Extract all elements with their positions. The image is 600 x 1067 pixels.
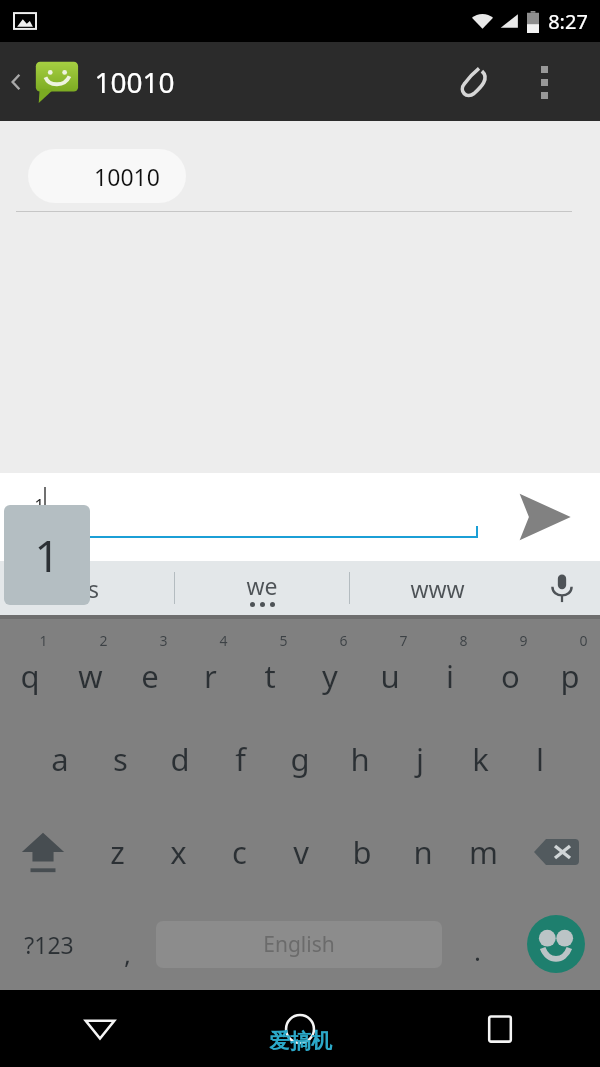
button[interactable]: 3: [120, 619, 180, 712]
button[interactable]: Shift: [0, 805, 86, 898]
staticText: e: [141, 655, 159, 697]
staticText: 爱搞机: [269, 1028, 332, 1054]
staticText: k: [472, 738, 489, 780]
staticText: l: [536, 738, 544, 780]
button[interactable]: Attach: [444, 52, 504, 112]
button[interactable]: Home: [200, 990, 400, 1067]
staticText: p: [560, 655, 580, 697]
button[interactable]: More options: [518, 56, 570, 108]
staticText: 3: [159, 631, 168, 650]
button[interactable]: 1: [0, 619, 60, 712]
staticText: 6: [339, 631, 348, 650]
staticText: we: [246, 570, 278, 601]
button[interactable]: we: [175, 561, 349, 615]
button[interactable]: as: [0, 561, 174, 615]
button[interactable]: www: [350, 561, 524, 615]
button[interactable]: v: [270, 805, 331, 898]
button[interactable]: s: [90, 712, 150, 805]
button[interactable]: ?123: [0, 898, 98, 990]
button[interactable]: k: [450, 712, 510, 805]
button[interactable]: 5: [240, 619, 300, 712]
button[interactable]: d: [150, 712, 210, 805]
staticText: 8:27: [548, 8, 588, 35]
staticText: b: [352, 831, 372, 873]
staticText: as: [75, 573, 99, 604]
button[interactable]: 7: [360, 619, 420, 712]
staticText: w: [78, 655, 103, 697]
staticText: m: [469, 831, 498, 873]
staticText: ?123: [24, 929, 74, 960]
button[interactable]: Emoji: [512, 898, 600, 990]
button[interactable]: m: [453, 805, 514, 898]
staticText: .: [474, 933, 481, 968]
staticText: 4: [219, 631, 228, 650]
button[interactable]: a: [30, 712, 90, 805]
button[interactable]: g: [270, 712, 330, 805]
staticText: g: [290, 738, 310, 780]
staticText: ,: [124, 936, 131, 971]
staticText: z: [110, 831, 125, 873]
staticText: 10010: [94, 161, 160, 192]
button[interactable]: 4: [180, 619, 240, 712]
staticText: v: [293, 831, 309, 873]
button[interactable]: Back: [0, 42, 175, 121]
staticText: 7: [399, 631, 408, 650]
staticText: c: [232, 831, 247, 873]
staticText: 2: [99, 631, 108, 650]
button[interactable]: Back: [0, 990, 200, 1067]
staticText: n: [413, 831, 433, 873]
staticText: a: [51, 738, 69, 780]
button[interactable]: b: [331, 805, 392, 898]
button[interactable]: j: [390, 712, 450, 805]
staticText: t: [264, 655, 276, 697]
staticText: 5: [279, 631, 288, 650]
staticText: i: [446, 655, 454, 697]
staticText: h: [350, 738, 370, 780]
button[interactable]: n: [392, 805, 453, 898]
staticText: www: [410, 573, 465, 604]
button[interactable]: 9: [480, 619, 540, 712]
staticText: u: [380, 655, 400, 697]
button[interactable]: ,: [98, 898, 156, 990]
button[interactable]: 2: [60, 619, 120, 712]
button[interactable]: f: [210, 712, 270, 805]
staticText: 10010: [94, 63, 175, 101]
staticText: f: [235, 738, 246, 780]
button[interactable]: l: [510, 712, 570, 805]
button[interactable]: 10010: [28, 149, 186, 203]
button[interactable]: Backspace: [514, 805, 600, 898]
staticText: j: [416, 738, 424, 780]
button[interactable]: Recents: [400, 990, 600, 1067]
staticText: 8: [459, 631, 468, 650]
staticText: q: [20, 655, 40, 697]
button[interactable]: c: [209, 805, 270, 898]
staticText: 1: [34, 493, 45, 518]
staticText: o: [501, 655, 520, 697]
staticText: 9: [519, 631, 528, 650]
staticText: y: [322, 655, 338, 697]
button[interactable]: z: [86, 805, 148, 898]
staticText: r: [204, 655, 217, 697]
staticText: 1: [39, 631, 48, 650]
staticText: x: [170, 831, 187, 873]
staticText: s: [113, 738, 128, 780]
button[interactable]: Send: [504, 477, 584, 557]
staticText: d: [170, 738, 190, 780]
staticText: 1: [34, 525, 60, 585]
button[interactable]: 0: [540, 619, 600, 712]
other: Back: [4, 70, 28, 94]
button[interactable]: 8: [420, 619, 480, 712]
button[interactable]: h: [330, 712, 390, 805]
staticText: 0: [579, 631, 588, 650]
button[interactable]: Voice input: [524, 561, 600, 615]
button[interactable]: English: [156, 921, 442, 968]
button[interactable]: 6: [300, 619, 360, 712]
staticText: English: [263, 930, 335, 959]
button[interactable]: x: [148, 805, 209, 898]
